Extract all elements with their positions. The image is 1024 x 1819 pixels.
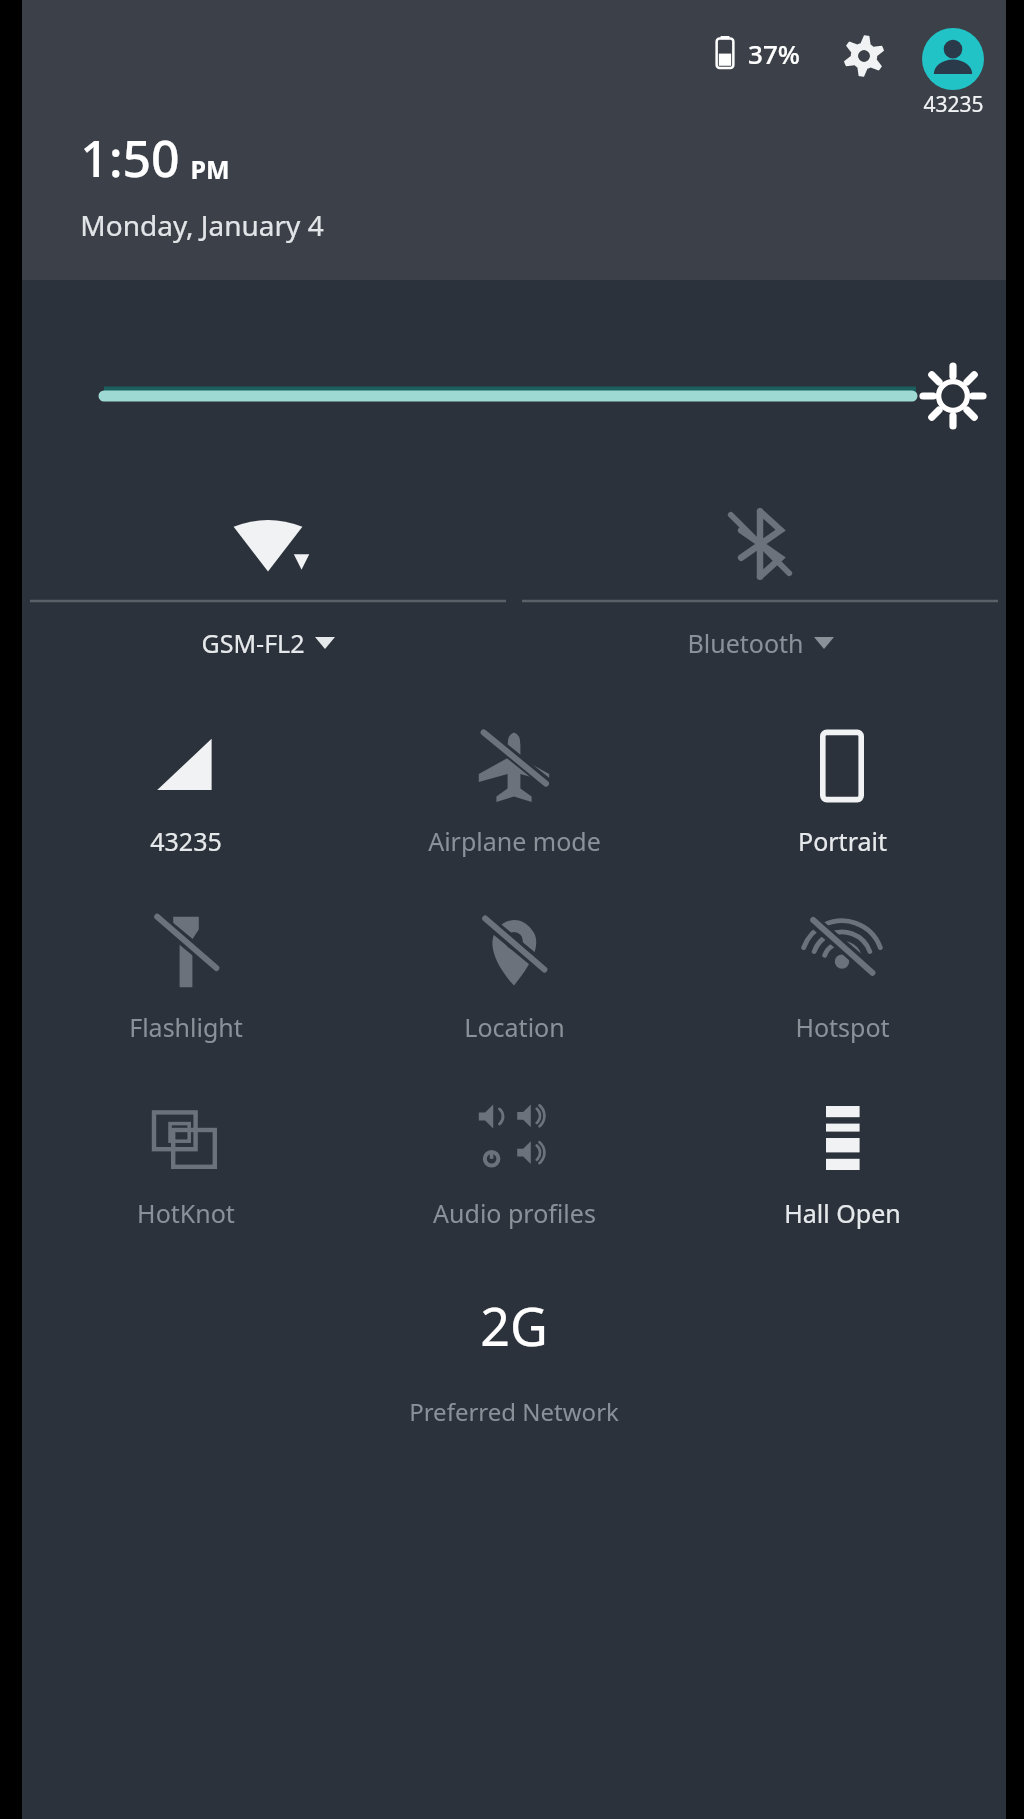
button[interactable]: Hotspot xyxy=(678,900,1006,1048)
button[interactable]: Airplane mode xyxy=(350,714,678,862)
staticText: GSM-FL2 xyxy=(201,626,305,660)
staticText: Portrait xyxy=(798,824,887,858)
button[interactable]: 2G xyxy=(22,1290,1006,1428)
staticText: Hotspot xyxy=(795,1010,890,1044)
staticText: Airplane mode xyxy=(428,824,601,858)
button[interactable]: Settings xyxy=(840,32,888,80)
staticText: HotKnot xyxy=(137,1196,235,1230)
staticText: Monday, January 4 xyxy=(80,206,324,244)
button[interactable]: Hall Open xyxy=(678,1086,1006,1234)
staticText: Flashlight xyxy=(129,1010,243,1044)
button[interactable]: Audio profiles xyxy=(350,1086,678,1234)
staticText: Location xyxy=(464,1010,565,1044)
staticText: 2G xyxy=(480,1290,548,1361)
staticText: 1:50 xyxy=(80,124,180,192)
button[interactable]: Location xyxy=(350,900,678,1048)
button[interactable]: 43235 xyxy=(22,714,350,862)
button[interactable]: Flashlight xyxy=(22,900,350,1048)
button[interactable]: Bluetooth xyxy=(514,488,1006,660)
button[interactable]: Portrait xyxy=(678,714,1006,862)
staticText: Audio profiles xyxy=(433,1196,596,1230)
staticText: 43235 xyxy=(923,90,984,119)
staticText: Bluetooth xyxy=(687,626,804,660)
staticText: 43235 xyxy=(150,824,222,858)
staticText: Preferred Network xyxy=(409,1395,619,1428)
staticText: Hall Open xyxy=(784,1196,901,1230)
button[interactable]: GSM-FL2 xyxy=(22,488,514,660)
staticText: PM xyxy=(190,152,230,186)
button[interactable]: HotKnot xyxy=(22,1086,350,1234)
staticText: 37% xyxy=(748,36,800,71)
button[interactable]: Brightness xyxy=(22,366,1006,426)
button[interactable]: User 43235 xyxy=(922,28,984,119)
